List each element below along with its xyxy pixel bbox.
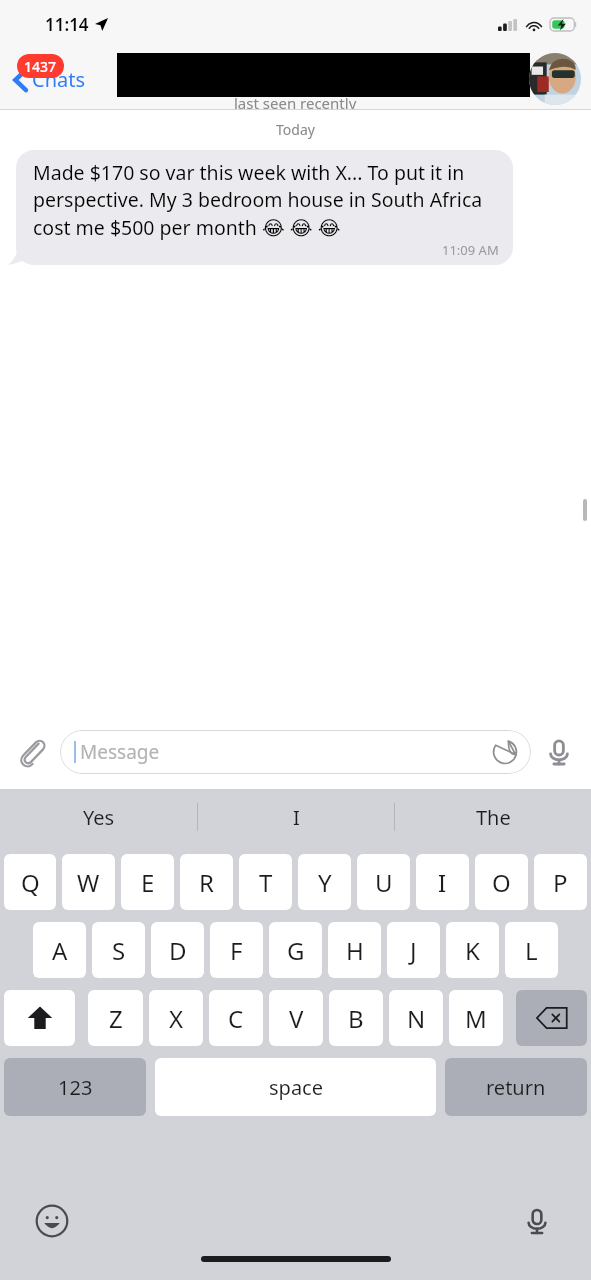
staticText: I <box>438 866 447 899</box>
button[interactable]: The <box>395 789 591 845</box>
staticText: 11:09 AM <box>442 241 499 259</box>
staticText: S <box>112 934 126 967</box>
button[interactable]: V <box>269 990 323 1046</box>
staticText: Chats <box>32 66 86 93</box>
button[interactable]: Stickers <box>490 737 520 767</box>
button[interactable]: S <box>92 922 145 978</box>
button[interactable]: Yes <box>0 789 197 845</box>
staticText: H <box>346 934 364 967</box>
staticText: The <box>476 804 511 831</box>
button[interactable]: Profile photo <box>529 53 581 105</box>
button[interactable]: Shift <box>4 990 75 1046</box>
staticText: E <box>141 866 155 899</box>
staticText: I <box>293 804 300 831</box>
button[interactable]: I <box>198 789 394 845</box>
staticText: Q <box>21 866 40 899</box>
staticText: Yes <box>83 804 115 831</box>
button[interactable]: Y <box>298 854 351 910</box>
button[interactable]: A <box>33 922 86 978</box>
staticText: C <box>228 1002 244 1035</box>
staticText: D <box>169 934 187 967</box>
button[interactable]: L <box>505 922 558 978</box>
staticText: Made $170 so var this week with X... To … <box>33 159 499 240</box>
staticText: F <box>230 934 243 967</box>
staticText: Z <box>109 1002 123 1035</box>
button[interactable]: Chats <box>10 60 90 99</box>
staticText: Message <box>80 739 160 765</box>
button[interactable]: X <box>149 990 203 1046</box>
button[interactable]: space <box>155 1058 436 1116</box>
button[interactable]: I <box>416 854 469 910</box>
staticText: U <box>375 866 393 899</box>
button[interactable]: O <box>475 854 528 910</box>
button[interactable]: F <box>210 922 263 978</box>
staticText: L <box>525 934 538 967</box>
staticText: 123 <box>58 1074 93 1101</box>
staticText: X <box>169 1002 184 1035</box>
button[interactable]: W <box>62 854 115 910</box>
staticText: V <box>289 1002 304 1035</box>
staticText: Today <box>0 120 591 139</box>
staticText: A <box>52 934 68 967</box>
staticText: 1437 <box>24 57 57 76</box>
staticText: W <box>77 866 100 899</box>
button[interactable]: N <box>389 990 443 1046</box>
staticText: last seen recently <box>234 93 357 110</box>
button[interactable]: T <box>239 854 292 910</box>
button[interactable]: C <box>209 990 263 1046</box>
staticText: P <box>553 866 568 899</box>
button[interactable]: Dictation <box>515 1199 559 1243</box>
button[interactable]: Delete <box>516 990 587 1046</box>
button[interactable]: E <box>121 854 174 910</box>
staticText: G <box>287 934 305 967</box>
button[interactable]: R <box>180 854 233 910</box>
button[interactable]: Message <box>60 730 531 774</box>
button[interactable]: J <box>387 922 440 978</box>
button[interactable]: Voice message <box>537 730 581 774</box>
button[interactable]: D <box>151 922 204 978</box>
staticText: M <box>465 1002 487 1035</box>
staticText: R <box>199 866 214 899</box>
staticText: return <box>486 1074 546 1101</box>
button[interactable]: K <box>446 922 499 978</box>
staticText: O <box>492 866 511 899</box>
staticText: space <box>269 1074 323 1101</box>
button[interactable]: return <box>445 1058 587 1116</box>
button[interactable]: B <box>329 990 383 1046</box>
staticText: B <box>348 1002 364 1035</box>
button[interactable]: Emoji <box>30 1199 74 1243</box>
staticText: 11:14 <box>45 13 89 36</box>
staticText: N <box>407 1002 426 1035</box>
button[interactable]: H <box>328 922 381 978</box>
staticText: Y <box>318 866 332 899</box>
button[interactable]: M <box>449 990 503 1046</box>
button[interactable]: 123 <box>4 1058 146 1116</box>
button[interactable]: Q <box>4 854 56 910</box>
staticText: K <box>465 934 480 967</box>
button[interactable]: Made $170 so var this week with X... To … <box>16 150 513 265</box>
button[interactable]: Z <box>88 990 143 1046</box>
button[interactable]: G <box>269 922 322 978</box>
button[interactable]: Attach <box>10 730 54 774</box>
staticText: T <box>259 866 273 899</box>
button[interactable]: P <box>534 854 587 910</box>
staticText: J <box>410 934 417 967</box>
button[interactable]: U <box>357 854 410 910</box>
